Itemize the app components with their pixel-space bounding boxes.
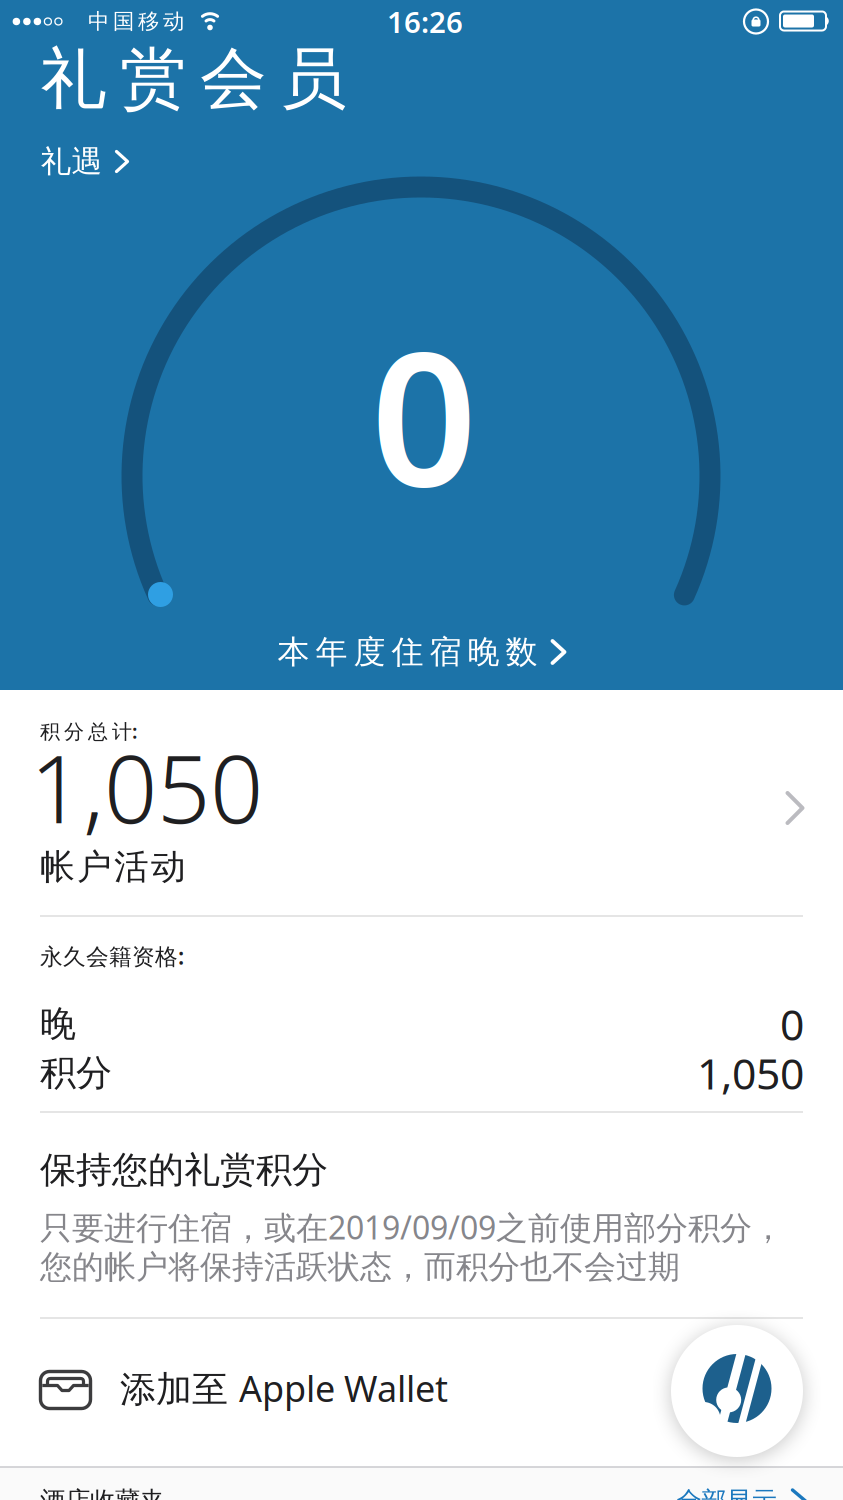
- staticText: 全部显示: [676, 1485, 776, 1500]
- staticText: 1,050: [30, 725, 263, 849]
- staticText: 积 分 总 计:: [40, 718, 138, 744]
- staticText: 16:26: [387, 2, 463, 41]
- staticText: 酒店收藏夹: [40, 1485, 165, 1500]
- staticText: 您的帐户将保持活跃状态，而积分也不会过期: [40, 1247, 680, 1287]
- button[interactable]: 礼遇: [40, 143, 127, 180]
- button[interactable]: 积 分 总 计:: [20, 696, 823, 908]
- staticText: 晚: [40, 1002, 76, 1046]
- button[interactable]: SPG: [671, 1325, 803, 1457]
- button[interactable]: 添加至 Apple Wallet: [20, 1330, 823, 1450]
- staticText: 0: [371, 291, 477, 537]
- staticText: 礼 赏 会 员: [40, 38, 347, 120]
- staticText: 0: [780, 996, 804, 1052]
- staticText: 永久会籍资格:: [40, 941, 184, 971]
- staticText: 添加至 Apple Wallet: [120, 1364, 448, 1412]
- staticText: 礼遇: [40, 143, 102, 180]
- button[interactable]: 全部显示: [676, 1485, 805, 1500]
- staticText: 中 国 移 动: [88, 8, 184, 35]
- staticText: 积分: [40, 1051, 112, 1095]
- staticText: 保持您的礼赏积分: [40, 1148, 328, 1192]
- staticText: 本 年 度 住 宿 晚 数: [277, 632, 537, 672]
- staticText: 1,050: [697, 1045, 804, 1101]
- staticText: 帐 户 活 动: [40, 846, 186, 888]
- button[interactable]: 本 年 度 住 宿 晚 数: [277, 632, 564, 672]
- staticText: 只要进行住宿，或在2019/09/09之前使用部分积分，: [40, 1206, 784, 1248]
